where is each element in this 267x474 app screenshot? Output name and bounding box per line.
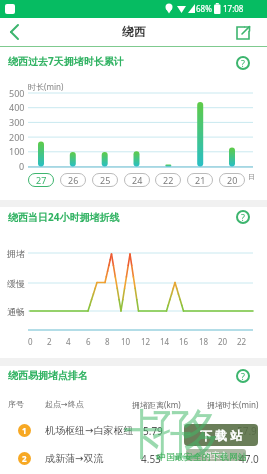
button[interactable]: 27 [28,173,54,187]
staticText: 拥堵距离(km) [132,399,181,410]
staticText: 14 [160,336,170,347]
staticText: 26 [68,174,79,186]
button[interactable]: 25 [92,173,118,187]
staticText: 0 [19,160,25,172]
staticText: 卡孖多 [130,400,214,467]
staticText: 2 [22,453,27,464]
staticText: 成新蒲→双流 [45,452,104,465]
button[interactable]: ? [236,369,250,383]
staticText: 2 [47,336,52,347]
staticText: 绕西过去7天拥堵时长累计 [8,54,124,68]
staticText: 100 [9,145,25,157]
staticText: 机场枢纽→白家枢纽 [45,424,134,437]
staticText: 0 [28,336,33,347]
staticText: 通畅 [7,306,25,317]
staticText: 27 [36,174,47,186]
staticText: ? [241,370,245,382]
staticText: 10 [121,336,131,347]
button[interactable]: 24 [124,173,150,187]
staticText: 22 [163,174,174,186]
staticText: 57.9 [237,424,257,438]
button[interactable] [0,417,267,445]
staticText: 25 [100,174,111,186]
staticText: 下 载 站 [200,427,243,443]
staticText: 200 [9,131,25,143]
button[interactable]: ? [236,56,250,70]
staticText: 拥堵时长(min) [207,399,259,410]
staticText: 绕西易拥堵点排名 [8,369,88,382]
staticText: 中国最安全的下载网站 [157,451,247,462]
button[interactable]: 20 [219,173,245,187]
staticText: 12 [141,336,151,347]
staticText: 1 [22,425,27,436]
staticText: 起点→终点 [45,399,84,409]
staticText: 8 [105,336,110,347]
button[interactable]: 22 [155,173,181,187]
staticText: 22 [237,336,247,347]
staticText: 400 [9,101,25,113]
staticText: ? [241,57,245,69]
staticText: 缓慢 [7,278,25,289]
staticText: 47.0 [239,452,259,466]
button[interactable] [4,22,26,44]
staticText: 很安全 [204,450,228,460]
button[interactable] [0,445,267,473]
staticText: ? [241,211,245,223]
staticText: 序号 [8,399,24,409]
staticText: 24 [132,174,143,186]
button[interactable]: 26 [60,173,86,187]
staticText: 5.79 [143,424,163,438]
staticText: 6 [86,336,91,347]
staticText: 日 [248,172,255,181]
button[interactable]: ? [236,210,250,224]
staticText: 4 [66,336,71,347]
staticText: 500 [9,87,25,99]
button[interactable]: 21 [187,173,213,187]
staticText: 绕西当日24小时拥堵折线 [8,210,120,224]
staticText: 20 [227,174,238,186]
staticText: 21 [195,174,206,186]
staticText: 18 [199,336,209,347]
staticText: 17:08 [223,3,244,14]
button[interactable] [233,23,253,43]
staticText: 4.53 [141,452,161,466]
staticText: 绕西 [122,24,146,39]
staticText: 拥堵 [7,248,25,259]
staticText: 时长(min) [28,81,64,92]
staticText: 20 [218,336,228,347]
staticText: 300 [9,116,25,128]
staticText: 16 [179,336,189,347]
staticText: 68% [196,3,212,14]
